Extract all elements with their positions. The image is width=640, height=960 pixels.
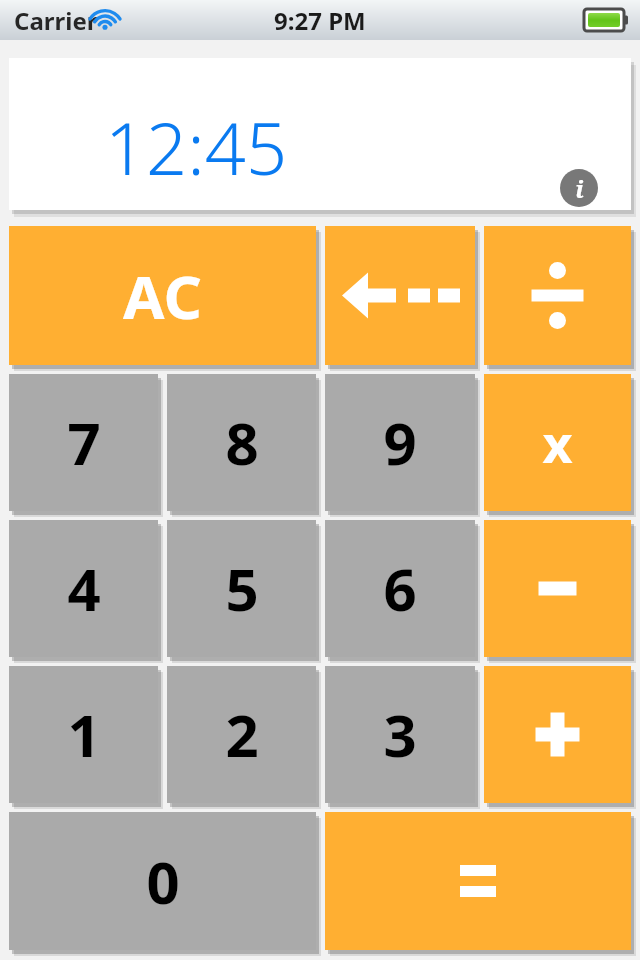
button[interactable]: 1 [9, 666, 158, 803]
staticText: 8 [225, 403, 259, 482]
staticText: 12:45 [105, 98, 288, 196]
button[interactable]: Backspace [325, 226, 475, 365]
staticText: 4 [67, 549, 101, 628]
staticText: i [575, 172, 584, 205]
button[interactable]: Equals [325, 812, 631, 950]
staticText: 9 [383, 403, 417, 482]
button[interactable]: 2 [167, 666, 316, 803]
button[interactable]: Divide [484, 226, 631, 365]
staticText: 2 [225, 695, 259, 774]
staticText: 9:27 PM [274, 4, 366, 37]
button[interactable]: 6 [325, 520, 475, 657]
staticText: 5 [225, 549, 259, 628]
button[interactable]: Plus [484, 666, 631, 803]
staticText: 6 [383, 549, 417, 628]
button[interactable]: 8 [167, 374, 316, 511]
staticText: x [542, 407, 573, 478]
staticText: Carrier [14, 4, 98, 37]
staticText: AC [123, 255, 202, 337]
button[interactable]: x [484, 374, 631, 511]
button[interactable]: 5 [167, 520, 316, 657]
staticText: 0 [146, 842, 180, 921]
button[interactable]: Info [559, 168, 599, 208]
button[interactable]: 7 [9, 374, 158, 511]
button[interactable]: 0 [9, 812, 316, 950]
staticText: 7 [67, 403, 101, 482]
staticText: 1 [67, 695, 101, 774]
staticText: 3 [383, 695, 417, 774]
button[interactable]: Minus [484, 520, 631, 657]
button[interactable]: 9 [325, 374, 475, 511]
button[interactable]: AC [9, 226, 316, 365]
button[interactable]: 4 [9, 520, 158, 657]
button[interactable]: 3 [325, 666, 475, 803]
